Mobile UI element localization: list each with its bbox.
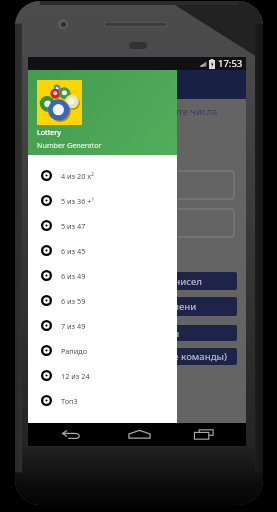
staticText: 6 из 49 [61, 271, 86, 281]
button[interactable]: Таблицы [39, 325, 237, 341]
staticText: 6 из 59 [61, 296, 86, 306]
button[interactable]: Рапидо [28, 338, 177, 363]
staticText: Топ3 [61, 396, 78, 406]
button[interactable]: 6 из 49 [28, 263, 177, 288]
staticText: Генерация имени [113, 300, 197, 313]
staticText: Лото (две команды) [134, 350, 227, 363]
staticText: Таблицы [138, 327, 180, 340]
button[interactable]: Генерация чисел [39, 272, 237, 290]
staticText: Рапидо [61, 346, 88, 356]
staticText: Number Generator [37, 140, 102, 150]
button[interactable]: 7 из 49 [28, 313, 177, 338]
staticText: Lottery [37, 127, 61, 137]
button[interactable]: Генерация имени [39, 297, 237, 316]
button[interactable]: 5 из 47 [28, 213, 177, 238]
staticText: 17:53 [218, 57, 243, 70]
button[interactable]: Recent apps [181, 423, 227, 446]
staticText: 6 из 45 [61, 246, 86, 256]
button[interactable]: Back [48, 423, 94, 446]
staticText: 5 из 36 +¹ [61, 196, 95, 206]
button[interactable]: 4 из 20 x² [28, 163, 177, 188]
staticText: Введите числа [150, 105, 218, 118]
button[interactable]: Лото (две команды) [39, 348, 237, 365]
button[interactable]: 5 из 36 +¹ [28, 188, 177, 213]
staticText: 12 из 24 [61, 371, 90, 381]
button[interactable]: Home [116, 423, 162, 446]
staticText: 4 из 20 x² [61, 171, 94, 181]
staticText: 7 из 49 [61, 321, 86, 331]
staticText: 5 из 47 [61, 221, 86, 231]
button[interactable]: 12 из 24 [28, 363, 177, 388]
button[interactable]: 6 из 45 [28, 238, 177, 263]
button[interactable]: 6 из 59 [28, 288, 177, 313]
button[interactable]: Топ3 [28, 388, 177, 413]
staticText: Генерация чисел [122, 275, 202, 288]
